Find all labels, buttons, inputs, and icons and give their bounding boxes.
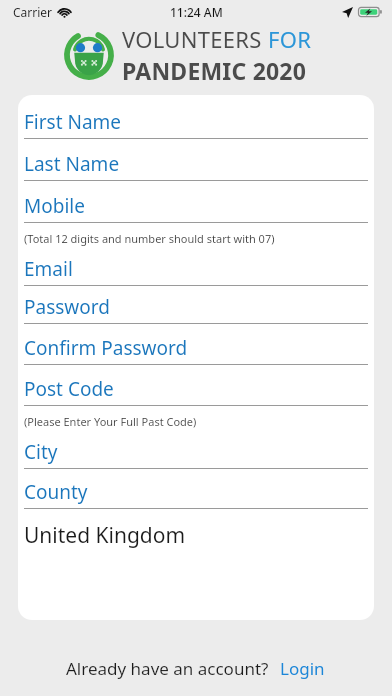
staticText: Already have an account? <box>66 657 269 680</box>
staticText: (Total 12 digits and number should start… <box>24 231 275 246</box>
staticText: Confirm Password <box>24 335 188 361</box>
staticText: 11:24 AM <box>170 4 223 20</box>
staticText: FOR <box>268 24 312 54</box>
button[interactable]: Last Name <box>18 151 374 181</box>
button[interactable]: Login <box>278 655 327 682</box>
staticText: Last Name <box>24 151 120 177</box>
button[interactable]: Email <box>18 256 374 286</box>
staticText: Password <box>24 294 110 320</box>
staticText: Email <box>24 256 73 282</box>
button[interactable]: Post Code <box>18 376 374 406</box>
staticText: VOLUNTEERS <box>122 24 268 54</box>
staticText: Carrier <box>13 4 53 20</box>
other: Location <box>342 7 353 18</box>
staticText: Post Code <box>24 376 114 402</box>
button[interactable]: County <box>18 479 374 509</box>
other: Volunteers for Pandemic 2020 logo <box>64 29 114 81</box>
button[interactable]: Confirm Password <box>18 335 374 365</box>
staticText: Mobile <box>24 193 85 219</box>
staticText: United Kingdom <box>24 521 186 550</box>
staticText: City <box>24 439 58 465</box>
button[interactable]: Mobile <box>18 193 374 223</box>
staticText: First Name <box>24 109 122 135</box>
staticText: County <box>24 479 88 505</box>
staticText: (Please Enter Your Full Past Code) <box>24 414 197 429</box>
staticText: PANDEMIC 2020 <box>122 55 307 86</box>
button[interactable]: Password <box>18 294 374 324</box>
staticText: Login <box>280 657 325 680</box>
button[interactable]: First Name <box>18 109 374 139</box>
button[interactable]: City <box>18 439 374 469</box>
